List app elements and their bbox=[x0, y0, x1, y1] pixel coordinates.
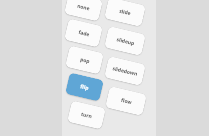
button[interactable]: flip bbox=[65, 72, 104, 102]
button[interactable]: turn bbox=[67, 100, 106, 130]
button[interactable]: fade bbox=[64, 18, 103, 48]
staticText: slideup bbox=[115, 36, 135, 47]
button[interactable]: pop bbox=[65, 45, 104, 75]
staticText: flow bbox=[120, 97, 132, 106]
staticText: pop bbox=[79, 56, 90, 65]
staticText: slide bbox=[118, 8, 131, 17]
button[interactable]: none bbox=[64, 0, 103, 22]
button[interactable]: slideup bbox=[104, 26, 146, 56]
staticText: turn bbox=[80, 111, 92, 120]
button[interactable]: slide bbox=[104, 0, 146, 27]
button[interactable]: flow bbox=[105, 86, 147, 116]
staticText: fade bbox=[77, 29, 90, 38]
staticText: none bbox=[76, 3, 91, 12]
button[interactable]: slidedown bbox=[104, 56, 146, 86]
staticText: flip bbox=[79, 83, 90, 92]
staticText: slidedown bbox=[111, 65, 138, 78]
